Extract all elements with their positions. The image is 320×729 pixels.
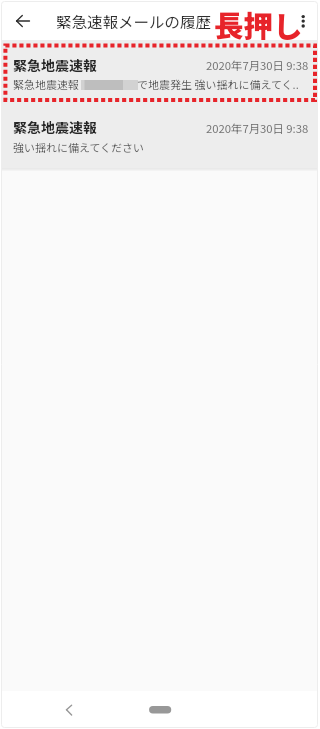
- staticText: 強い揺れに備えてください: [13, 139, 145, 155]
- staticText: 緊急地震速報: [13, 117, 97, 137]
- staticText: で地震発生 強い揺れに備えてく..: [137, 76, 299, 92]
- button[interactable]: Back: [54, 695, 84, 725]
- staticText: 緊急地震速報: [13, 76, 79, 92]
- button[interactable]: その他のオプション: [289, 4, 319, 34]
- staticText: 緊急速報メールの履歴: [56, 10, 212, 32]
- button[interactable]: Home: [140, 695, 180, 725]
- button[interactable]: 緊急地震速報: [0, 40, 320, 104]
- button[interactable]: 戻る: [5, 3, 40, 38]
- staticText: 緊急地震速報: [13, 55, 97, 75]
- staticText: 2020年7月30日 9:38: [206, 120, 309, 136]
- staticText: 2020年7月30日 9:38: [206, 57, 309, 73]
- staticText: 長押し: [214, 3, 303, 46]
- button[interactable]: 緊急地震速報: [0, 104, 320, 169]
